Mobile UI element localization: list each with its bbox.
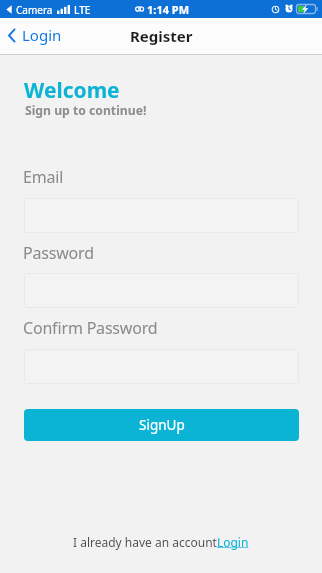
staticText: Sign up to continue!: [25, 102, 147, 119]
staticText: Password: [23, 242, 94, 264]
staticText: Confirm Password: [23, 317, 158, 339]
staticText: Login: [22, 25, 62, 45]
button[interactable]: I already have an accountLogin: [73, 534, 249, 550]
staticText: Register: [130, 26, 193, 46]
staticText: Email: [23, 166, 64, 188]
staticText: SignUp: [139, 416, 185, 434]
staticText: 1:14 PM: [147, 2, 190, 17]
staticText: Welcome: [24, 76, 120, 105]
staticText: Camera: [16, 3, 53, 17]
staticText: LTE: [74, 3, 91, 17]
button[interactable]: Login: [5, 23, 68, 49]
button[interactable]: SignUp: [24, 409, 299, 441]
